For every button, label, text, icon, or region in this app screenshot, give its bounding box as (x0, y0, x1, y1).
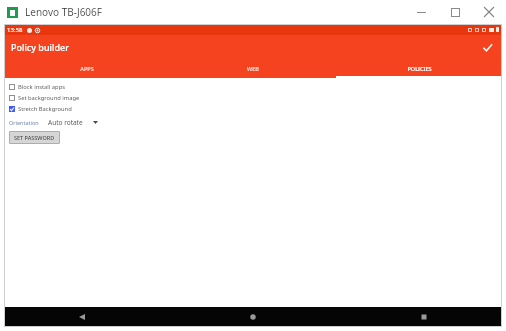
staticText: SET PASSWORD (14, 134, 55, 141)
staticText: Policy builder (11, 41, 69, 53)
button[interactable]: Recent apps (336, 307, 502, 327)
button[interactable]: WEB (170, 59, 336, 78)
button[interactable]: Maximize (438, 0, 472, 24)
staticText: POLICIES (407, 65, 432, 72)
staticText: Set background image (18, 94, 80, 102)
button[interactable]: Back (4, 307, 170, 327)
button[interactable]: Close (472, 0, 506, 24)
button[interactable]: APPS (4, 59, 170, 78)
button[interactable]: Save policy (472, 35, 502, 59)
button[interactable]: SET PASSWORD (9, 131, 60, 144)
staticText: 13:58 (7, 26, 23, 34)
staticText: APPS (80, 65, 94, 72)
staticText: Lenovo TB-J606F (25, 5, 102, 19)
staticText: WEB (247, 65, 259, 72)
staticText: Block install apps (18, 83, 66, 91)
staticText: Stretch Background (18, 105, 72, 113)
button[interactable]: Minimize (404, 0, 438, 24)
button[interactable]: Stretch Background (7, 103, 502, 114)
button[interactable]: Block install apps (7, 81, 502, 92)
button[interactable]: Home (170, 307, 336, 327)
staticText: Auto rotate (48, 118, 83, 127)
button[interactable]: POLICIES (336, 59, 502, 78)
button[interactable]: Set background image (7, 92, 502, 103)
staticText: Orientation (9, 119, 39, 126)
button[interactable]: Auto rotate (48, 118, 98, 127)
